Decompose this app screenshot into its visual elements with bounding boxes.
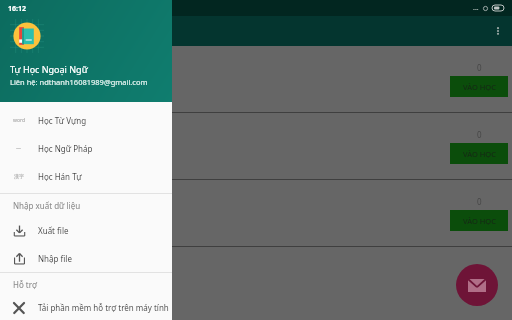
staticText: Nhập xuất dữ liệu (13, 200, 81, 211)
button[interactable]: Nhập file (0, 244, 172, 272)
staticText: 0 (477, 62, 482, 73)
button[interactable]: 0 (0, 113, 512, 179)
button[interactable]: 0 (0, 180, 512, 246)
staticText: Học Từ Vựng (38, 115, 87, 126)
button[interactable]: Tải phần mềm hỗ trợ trên máy tính (0, 295, 172, 320)
button[interactable]: Send email (456, 264, 498, 306)
staticText: Học Hán Tự (38, 171, 82, 182)
staticText: Học Ngữ Pháp (38, 143, 93, 154)
staticText: 漢字 (14, 173, 24, 179)
button[interactable]: VÀO HỌC (450, 76, 508, 97)
staticText: ... (473, 3, 479, 13)
staticText: Tự Học Ngoại Ngữ (10, 63, 88, 75)
staticText: VÀO HỌC (463, 82, 496, 92)
staticText: VÀO HỌC (463, 149, 496, 159)
button[interactable]: 漢字 (0, 162, 172, 190)
button[interactable]: Xuất file (0, 216, 172, 244)
staticText: 0 (477, 196, 482, 207)
button[interactable]: More options (484, 17, 512, 45)
staticText: 16:12 (8, 4, 26, 14)
button[interactable]: — (0, 134, 172, 162)
button[interactable]: VÀO HỌC (450, 143, 508, 164)
staticText: 0 (477, 129, 482, 140)
button[interactable]: VÀO HỌC (450, 210, 508, 231)
staticText: Nhập file (38, 253, 72, 264)
staticText: VÀO HỌC (463, 216, 496, 226)
staticText: Liên hệ: ndthanh16081989@gmail.com (10, 77, 148, 87)
staticText: — (16, 145, 22, 152)
button[interactable]: word (0, 106, 172, 134)
button[interactable]: 0 (0, 46, 512, 112)
staticText: Tải phần mềm hỗ trợ trên máy tính (38, 302, 169, 313)
staticText: word (13, 117, 25, 124)
staticText: Hỗ trợ (13, 279, 37, 290)
staticText: Xuất file (38, 225, 69, 236)
